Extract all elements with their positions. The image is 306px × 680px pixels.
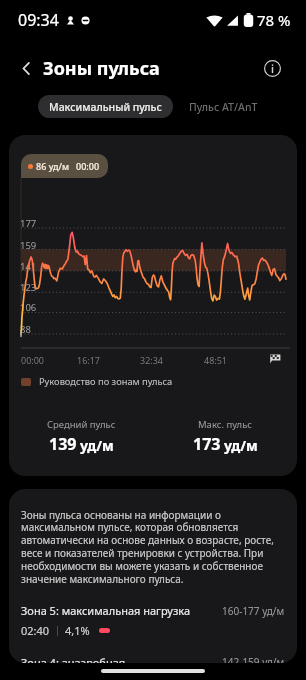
staticText: Зоны пульса [43, 56, 160, 81]
staticText: 09:34 [18, 9, 59, 31]
staticText: Руководство по зонам пульса [39, 375, 173, 388]
staticText: 00:00 [76, 160, 100, 172]
staticText: 86 уд/м [36, 160, 70, 172]
staticText: 02:40 [21, 623, 50, 638]
staticText: 142-159 уд/м [222, 655, 285, 663]
staticText: 141 [20, 260, 37, 273]
staticText: 4,1% [65, 623, 90, 638]
staticText: 106 [20, 301, 37, 314]
staticText: уд/м [224, 436, 258, 455]
staticText: 16:17 [77, 354, 101, 366]
staticText: 00:00 [21, 354, 45, 366]
staticText: Пульс AT/AnT [189, 100, 258, 114]
button[interactable]: Info [255, 51, 289, 85]
staticText: 32:34 [140, 354, 164, 366]
staticText: 159 [20, 239, 37, 252]
staticText: Средний пульс [47, 418, 116, 431]
button[interactable]: Back [9, 51, 43, 85]
staticText: 88 [20, 323, 31, 336]
button[interactable]: Зона 4: анаэробная [21, 655, 285, 663]
button[interactable]: Максимальный пульс [38, 95, 173, 118]
staticText: 173 [193, 433, 221, 455]
staticText: 78 % [257, 10, 291, 30]
staticText: уд/м [80, 436, 114, 455]
staticText: Зона 5: максимальная нагрузка [21, 603, 190, 618]
staticText: Макс. пульс [198, 418, 253, 431]
staticText: 48:51 [204, 354, 228, 366]
staticText: Максимальный пульс [49, 100, 162, 114]
staticText: Зона 4: анаэробная [21, 655, 126, 663]
staticText: 139 [49, 433, 77, 455]
staticText: 160-177 уд/м [222, 604, 285, 618]
staticText: 123 [20, 281, 37, 294]
button[interactable]: Зона 5: максимальная нагрузка [21, 603, 285, 638]
button[interactable]: Пульс AT/AnT [189, 95, 258, 118]
staticText: 177 [20, 217, 37, 230]
staticText: Зоны пульса основаны на информации о мак… [21, 508, 285, 586]
